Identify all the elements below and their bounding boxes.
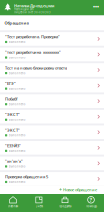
- staticText: "тест разработчика хххххххх": [5, 50, 61, 55]
- staticText: Помощь: [85, 204, 96, 208]
- button[interactable]: Проверка обращения 5: [0, 172, 104, 186]
- staticText: "ЕЗЭЙЗ": [5, 143, 21, 148]
- staticText: Главная: [7, 204, 18, 208]
- button[interactable]: "ЕЗЭЙЗ": [0, 141, 104, 155]
- button[interactable]: Побабf: [0, 94, 104, 108]
- button[interactable]: Счета: [26, 194, 52, 212]
- button[interactable]: More options: [90, 1, 101, 11]
- staticText: Наталья Дроздецкая: [14, 3, 54, 8]
- staticText: Обращения: [4, 20, 28, 26]
- button[interactable]: "Тест разработана. Проверка": [0, 32, 104, 46]
- staticText: Выполнено: [9, 87, 26, 90]
- button[interactable]: ?: [78, 194, 104, 212]
- staticText: Счета: [35, 204, 42, 208]
- button[interactable]: +: [0, 185, 104, 194]
- staticText: Проверка обращения 5: [5, 174, 48, 179]
- button[interactable]: "ЭКСТ": [0, 110, 104, 124]
- staticText: "ЭКСТ": [5, 112, 20, 117]
- staticText: Выполнено: [9, 165, 26, 168]
- staticText: Выполнено: [9, 133, 26, 137]
- staticText: Выполнено: [9, 149, 26, 153]
- staticText: Выполнено: [9, 180, 26, 184]
- staticText: •••: [93, 3, 99, 10]
- staticText: Тест на новую блокировку ответа: [5, 65, 67, 70]
- button[interactable]: Продукты: [52, 194, 78, 212]
- button[interactable]: "ЕГЭ": [0, 79, 104, 92]
- staticText: ?: [89, 196, 92, 203]
- staticText: "ЭКСТ": [5, 127, 20, 133]
- staticText: "Тест разработана. Проверка": [5, 34, 60, 39]
- staticText: Настоящий а/б: [14, 7, 34, 11]
- staticText: Выполнено: [9, 56, 26, 59]
- button[interactable]: "хн'хн'х": [0, 156, 104, 170]
- staticText: Выполнено: [9, 71, 26, 75]
- button[interactable]: "тест разработчика хххххххх": [0, 48, 104, 61]
- staticText: "хн'хн'х": [5, 158, 23, 164]
- staticText: Продукты: [58, 204, 71, 208]
- staticText: Побабf: [5, 96, 17, 102]
- staticText: "ЕГЭ": [5, 81, 16, 86]
- staticText: Новое обращение: [62, 187, 97, 192]
- staticText: Лицевой счет 30-030303: [14, 10, 51, 14]
- staticText: Выполнено: [9, 118, 26, 121]
- button[interactable]: "ЭКСТ": [0, 125, 104, 139]
- staticText: Выполнено: [9, 102, 26, 106]
- button[interactable]: Главная: [0, 194, 26, 212]
- staticText: +: [59, 186, 62, 193]
- button[interactable]: Тест на новую блокировку ответа: [0, 63, 104, 77]
- staticText: Выполнено: [9, 40, 26, 44]
